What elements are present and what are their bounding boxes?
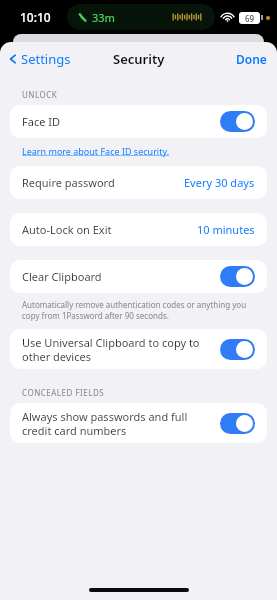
button[interactable]: Require password xyxy=(10,166,267,199)
staticText: Security xyxy=(113,50,165,68)
staticText: 69 xyxy=(245,13,255,24)
button[interactable]: Toggle setting xyxy=(220,339,255,360)
staticText: Always show passwords and full credit ca… xyxy=(22,409,212,438)
button[interactable]: Settings xyxy=(0,45,79,73)
staticText: UNLOCK xyxy=(22,89,58,100)
staticText: Require password xyxy=(22,175,184,190)
button[interactable]: Use Universal Clipboard to copy to other… xyxy=(10,329,267,369)
staticText: 10 minutes xyxy=(197,222,255,237)
staticText: 10:10 xyxy=(20,9,51,25)
staticText: 33m xyxy=(92,10,116,25)
staticText: Use Universal Clipboard to copy to other… xyxy=(22,335,212,364)
staticText: Settings xyxy=(21,50,71,68)
button[interactable]: Done xyxy=(226,44,277,74)
staticText: Auto-Lock on Exit xyxy=(22,222,197,237)
staticText: Face ID xyxy=(22,114,212,129)
staticText: Every 30 days xyxy=(184,175,255,190)
button[interactable]: Always show passwords and full credit ca… xyxy=(10,403,267,443)
staticText: Clear Clipboard xyxy=(22,269,212,284)
button[interactable]: Toggle setting xyxy=(220,413,255,434)
staticText: Automatically remove authentication code… xyxy=(22,299,263,321)
button[interactable]: Toggle setting xyxy=(220,111,255,132)
button[interactable]: Auto-Lock on Exit xyxy=(10,213,267,246)
button[interactable]: Toggle setting xyxy=(220,266,255,287)
button[interactable]: Learn more about Face ID security. xyxy=(22,145,170,157)
button[interactable]: Face ID xyxy=(10,105,267,138)
staticText: CONCEALED FIELDS xyxy=(22,387,105,398)
button[interactable]: Clear Clipboard xyxy=(10,260,267,293)
